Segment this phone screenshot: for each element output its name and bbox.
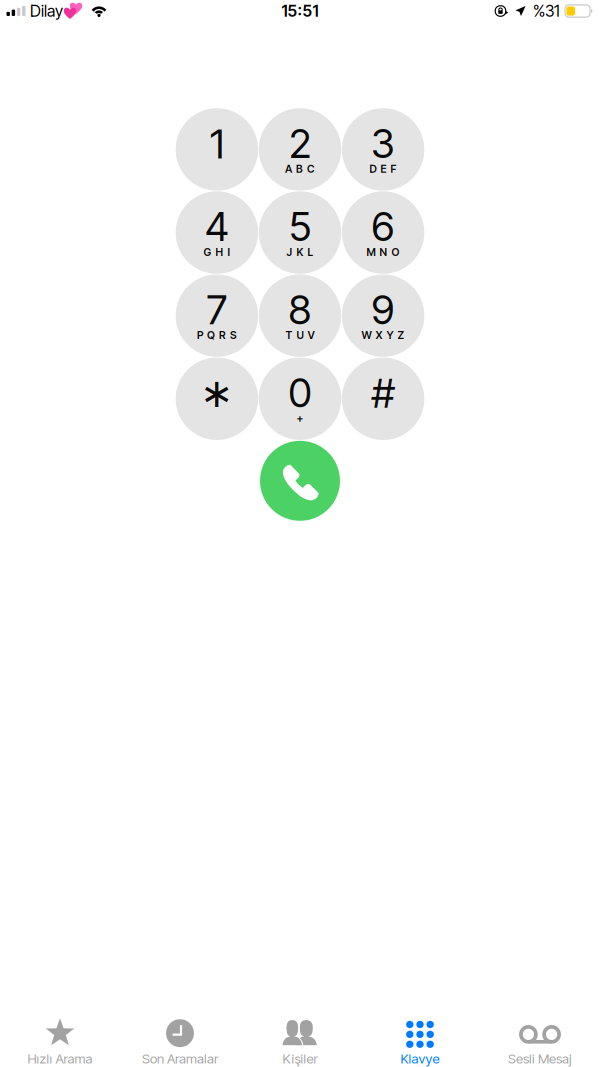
staticText: 2 xyxy=(289,119,311,168)
button[interactable]: 1 xyxy=(176,108,258,191)
staticText: 4 xyxy=(205,202,229,251)
button[interactable]: Call xyxy=(260,441,340,521)
button[interactable]: 6 xyxy=(342,191,424,274)
staticText: Klavye xyxy=(400,1051,439,1067)
staticText: J K L xyxy=(286,246,313,258)
staticText: # xyxy=(372,369,395,417)
button[interactable]: 3 xyxy=(342,108,424,191)
staticText: Son Aramalar xyxy=(142,1051,218,1067)
button[interactable]: 5 xyxy=(259,191,341,274)
button[interactable]: Sesli Mesaj xyxy=(480,1000,600,1067)
staticText: 8 xyxy=(288,285,311,334)
staticText: %31 xyxy=(533,1,560,21)
button[interactable]: # xyxy=(342,357,424,440)
button[interactable]: Son Aramalar xyxy=(120,1000,240,1067)
button[interactable]: 4 xyxy=(176,191,258,274)
staticText: Sesli Mesaj xyxy=(508,1051,572,1067)
staticText: A B C xyxy=(285,162,315,175)
staticText: Kişiler xyxy=(282,1051,317,1067)
button[interactable]: 7 xyxy=(176,274,258,357)
button[interactable]: ∗ xyxy=(176,357,258,440)
button[interactable]: 9 xyxy=(342,274,424,357)
staticText: 15:51 xyxy=(281,1,318,21)
staticText: Hızlı Arama xyxy=(27,1051,92,1067)
staticText: 7 xyxy=(206,285,227,334)
staticText: ∗ xyxy=(200,370,234,417)
staticText: + xyxy=(296,412,303,425)
button[interactable]: Kişiler xyxy=(240,1000,360,1067)
staticText: 5 xyxy=(289,202,311,251)
staticText: P Q R S xyxy=(197,329,237,342)
button[interactable]: 2 xyxy=(259,108,341,191)
staticText: 3 xyxy=(371,119,395,168)
staticText: 0 xyxy=(288,369,311,417)
staticText: 9 xyxy=(372,285,395,334)
staticText: M N O xyxy=(367,246,400,258)
staticText: T U V xyxy=(285,329,314,342)
staticText: Dilay xyxy=(30,1,63,21)
button[interactable]: Hızlı Arama xyxy=(0,1000,120,1067)
staticText: W X Y Z xyxy=(362,329,405,342)
button[interactable]: 8 xyxy=(259,274,341,357)
staticText: D E F xyxy=(370,162,397,175)
button[interactable]: Klavye xyxy=(360,1000,480,1067)
button[interactable]: 0 xyxy=(259,357,341,440)
staticText: 6 xyxy=(372,202,395,251)
staticText: G H I xyxy=(203,246,230,258)
staticText: 1 xyxy=(210,120,224,168)
